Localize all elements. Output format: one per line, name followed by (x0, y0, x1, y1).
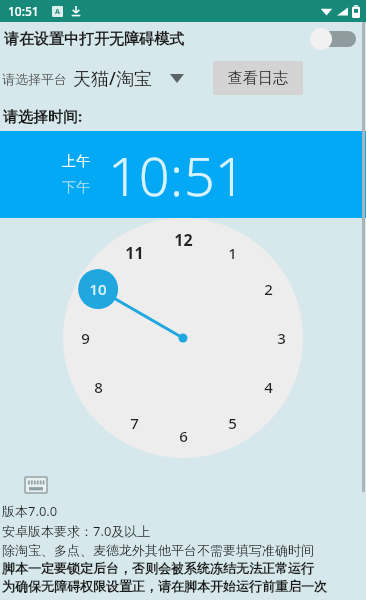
button[interactable]: Keyboard (24, 476, 48, 494)
button[interactable]: 4 (255, 376, 281, 398)
staticText: 下午 (62, 179, 90, 197)
button[interactable]: 10 (108, 138, 170, 212)
button[interactable]: 11 (121, 242, 147, 264)
button[interactable]: 下午 (62, 179, 90, 197)
button[interactable]: 1 (219, 242, 245, 264)
button[interactable]: 6 (170, 425, 196, 447)
staticText: 11 (125, 242, 144, 264)
button[interactable]: 请选择平台 (2, 66, 184, 91)
staticText: 6 (179, 426, 188, 446)
staticText: 为确保无障碍权限设置正，请在脚本开始运行前重启一次 (2, 578, 327, 594)
staticText: 4 (264, 377, 273, 397)
button[interactable]: 51 (184, 138, 246, 212)
button[interactable]: 12 (170, 229, 196, 251)
staticText: 天猫/淘宝 (73, 66, 152, 91)
staticText: 安卓版本要求：7.0及以上 (2, 522, 151, 540)
staticText: 请选择平台 (2, 71, 67, 87)
button[interactable]: 7 (121, 412, 147, 434)
button[interactable]: 上午 (62, 153, 90, 171)
staticText: 3 (277, 328, 286, 348)
staticText: 1 (228, 243, 237, 263)
staticText: 请在设置中打开无障碍模式 (4, 30, 184, 49)
staticText: 2 (264, 279, 273, 299)
staticText: 版本7.0.0 (2, 502, 58, 520)
staticText: 除淘宝、多点、麦德龙外其他平台不需要填写准确时间 (2, 542, 314, 558)
button[interactable]: 10 (85, 278, 111, 300)
staticText: 上午 (62, 153, 90, 171)
button[interactable]: 5 (219, 412, 245, 434)
staticText: 8 (94, 377, 103, 397)
button[interactable]: 查看日志 (213, 61, 303, 95)
staticText: : (170, 138, 184, 212)
staticText: A (55, 7, 60, 17)
staticText: 10:51 (8, 3, 39, 19)
staticText: 12 (174, 229, 193, 251)
staticText: 10 (89, 279, 107, 299)
staticText: 查看日志 (228, 69, 288, 88)
button[interactable]: 9 (72, 327, 98, 349)
button[interactable]: Accessibility toggle (310, 26, 356, 52)
staticText: 5 (228, 413, 237, 433)
button[interactable]: 2 (255, 278, 281, 300)
staticText: 脚本一定要锁定后台，否则会被系统冻结无法正常运行 (2, 560, 314, 576)
button[interactable]: 8 (85, 376, 111, 398)
staticText: 9 (81, 328, 90, 348)
staticText: 请选择时间: (3, 106, 83, 126)
button[interactable]: 3 (268, 327, 294, 349)
staticText: 7 (130, 413, 139, 433)
